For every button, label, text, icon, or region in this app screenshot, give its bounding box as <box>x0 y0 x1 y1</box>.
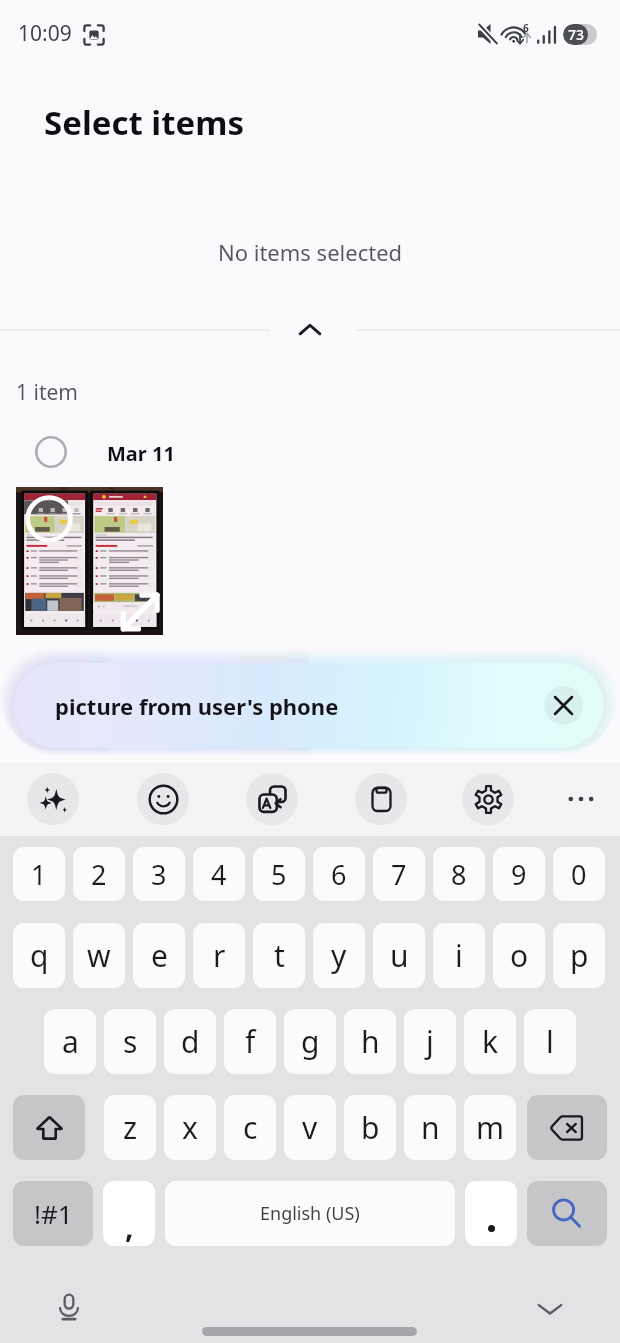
staticText: 8 <box>451 856 467 893</box>
button[interactable]: a <box>44 1009 96 1074</box>
button[interactable]: r <box>193 923 245 988</box>
staticText: 6 <box>331 856 347 893</box>
button[interactable]: o <box>493 923 545 988</box>
staticText: 7 <box>391 856 407 893</box>
staticText: 2 <box>91 856 107 893</box>
staticText: i <box>455 935 463 976</box>
staticText: 1 item <box>16 378 78 407</box>
button[interactable]: Collapse <box>293 318 327 340</box>
button[interactable]: 3 <box>133 847 185 901</box>
staticText: 1 <box>31 856 47 893</box>
button[interactable]: q <box>13 923 65 988</box>
button[interactable]: n <box>404 1095 456 1160</box>
button[interactable]: t <box>253 923 305 988</box>
button[interactable]: g <box>284 1009 336 1074</box>
button[interactable] <box>35 436 67 468</box>
staticText: z <box>123 1107 138 1148</box>
button[interactable] <box>16 487 163 635</box>
button[interactable]: l <box>524 1009 576 1074</box>
staticText: , <box>125 1206 134 1246</box>
button[interactable]: m <box>464 1095 516 1160</box>
button[interactable]: 2 <box>73 847 125 901</box>
button[interactable]: !#1 <box>13 1181 93 1246</box>
button[interactable]: Remove <box>544 686 583 725</box>
staticText: v <box>302 1107 318 1148</box>
button[interactable]: 1 <box>13 847 65 901</box>
button[interactable]: y <box>313 923 365 988</box>
button[interactable]: i <box>433 923 485 988</box>
staticText: k <box>482 1021 499 1062</box>
staticText: s <box>123 1021 138 1062</box>
staticText: picture from user's phone <box>55 691 339 721</box>
staticText: c <box>243 1107 258 1148</box>
button[interactable]: 4 <box>193 847 245 901</box>
staticText: e <box>151 935 168 976</box>
staticText: m <box>476 1107 505 1148</box>
button[interactable]: Clipboard <box>355 773 407 825</box>
button[interactable]: Translate <box>246 773 298 825</box>
button[interactable]: More options <box>555 773 607 825</box>
button[interactable]: Backspace <box>527 1095 607 1160</box>
button[interactable]: 6 <box>313 847 365 901</box>
button[interactable]: English (US) <box>165 1181 455 1246</box>
button[interactable]: s <box>104 1009 156 1074</box>
staticText: u <box>390 935 409 976</box>
staticText: r <box>213 935 226 976</box>
button[interactable]: v <box>284 1095 336 1160</box>
button[interactable]: h <box>344 1009 396 1074</box>
staticText: 6 <box>523 21 529 35</box>
staticText: No items selected <box>218 237 403 267</box>
button[interactable]: Hide keyboard <box>528 1287 572 1331</box>
staticText: q <box>30 935 49 976</box>
button[interactable]: w <box>73 923 125 988</box>
button[interactable]: 8 <box>433 847 485 901</box>
staticText: Select items <box>44 100 244 145</box>
button[interactable]: 9 <box>493 847 545 901</box>
button[interactable]: 7 <box>373 847 425 901</box>
button[interactable]: Emoji <box>137 773 189 825</box>
staticText: j <box>426 1021 434 1062</box>
button[interactable] <box>465 1181 517 1246</box>
staticText: t <box>274 935 285 976</box>
staticText: n <box>421 1107 440 1148</box>
button[interactable]: , <box>103 1181 155 1246</box>
button[interactable]: e <box>133 923 185 988</box>
staticText: 3 <box>151 856 167 893</box>
staticText: 0 <box>571 856 587 893</box>
button[interactable]: j <box>404 1009 456 1074</box>
staticText: h <box>361 1021 380 1062</box>
staticText: p <box>570 935 589 976</box>
button[interactable]: d <box>164 1009 216 1074</box>
staticText: a <box>62 1021 79 1062</box>
button[interactable]: x <box>164 1095 216 1160</box>
button[interactable]: p <box>553 923 605 988</box>
staticText: o <box>510 935 529 976</box>
button[interactable]: picture from user's phone <box>14 663 604 748</box>
staticText: d <box>181 1021 200 1062</box>
staticText: 73 <box>568 25 585 44</box>
button[interactable]: Shift <box>13 1095 85 1160</box>
button[interactable]: u <box>373 923 425 988</box>
button[interactable]: f <box>224 1009 276 1074</box>
staticText: !#1 <box>34 1196 73 1231</box>
button[interactable]: Settings <box>462 773 514 825</box>
button[interactable]: 5 <box>253 847 305 901</box>
button[interactable]: c <box>224 1095 276 1160</box>
staticText: English (US) <box>260 1201 360 1226</box>
button[interactable]: AI suggestions <box>27 773 79 825</box>
staticText: l <box>546 1021 554 1062</box>
staticText: 5 <box>271 856 287 893</box>
staticText: y <box>331 935 347 976</box>
staticText: b <box>361 1107 380 1148</box>
button[interactable]: z <box>104 1095 156 1160</box>
button[interactable]: k <box>464 1009 516 1074</box>
staticText: w <box>87 935 111 976</box>
button[interactable]: 0 <box>553 847 605 901</box>
button[interactable]: b <box>344 1095 396 1160</box>
staticText: f <box>245 1021 256 1062</box>
staticText: 9 <box>511 856 527 893</box>
staticText: 10:09 <box>18 19 72 48</box>
button[interactable]: Search <box>527 1181 607 1246</box>
button[interactable]: Voice input <box>47 1285 91 1329</box>
staticText: Mar 11 <box>107 440 175 467</box>
